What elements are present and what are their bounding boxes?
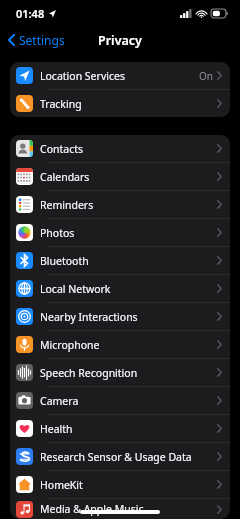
button[interactable]: HomeKit <box>10 471 230 498</box>
button[interactable]: Calendars <box>10 163 230 190</box>
button[interactable]: Nearby Interactions <box>10 303 230 330</box>
staticText: Photos <box>40 226 217 240</box>
button[interactable]: Reminders <box>10 191 230 218</box>
staticText: Calendars <box>40 170 217 184</box>
staticText: HomeKit <box>40 478 217 492</box>
staticText: Health <box>40 422 217 436</box>
staticText: Local Network <box>40 282 217 296</box>
button[interactable]: Media & Apple Music <box>10 499 230 519</box>
staticText: Contacts <box>40 142 217 156</box>
button[interactable]: Research Sensor & Usage Data <box>10 443 230 470</box>
button[interactable]: Contacts <box>10 135 230 162</box>
staticText: Media & Apple Music <box>40 502 217 516</box>
button[interactable]: Photos <box>10 219 230 246</box>
button[interactable]: Location Services <box>10 62 230 89</box>
button[interactable]: Local Network <box>10 275 230 302</box>
staticText: Settings <box>19 32 65 48</box>
staticText: On <box>199 69 213 83</box>
button[interactable]: Health <box>10 415 230 442</box>
staticText: 01:48 <box>16 6 45 21</box>
staticText: Microphone <box>40 338 217 352</box>
staticText: Location Services <box>40 69 199 83</box>
staticText: Reminders <box>40 198 217 212</box>
button[interactable]: Tracking <box>10 90 230 117</box>
button[interactable]: Speech Recognition <box>10 359 230 386</box>
button[interactable]: Camera <box>10 387 230 414</box>
button[interactable]: Settings <box>0 28 73 52</box>
staticText: Speech Recognition <box>40 366 217 380</box>
staticText: Bluetooth <box>40 254 217 268</box>
staticText: Nearby Interactions <box>40 310 217 324</box>
staticText: Privacy <box>98 32 142 49</box>
staticText: Camera <box>40 394 217 408</box>
button[interactable]: Microphone <box>10 331 230 358</box>
button[interactable]: Bluetooth <box>10 247 230 274</box>
staticText: Research Sensor & Usage Data <box>40 450 217 464</box>
staticText: Tracking <box>40 97 217 111</box>
